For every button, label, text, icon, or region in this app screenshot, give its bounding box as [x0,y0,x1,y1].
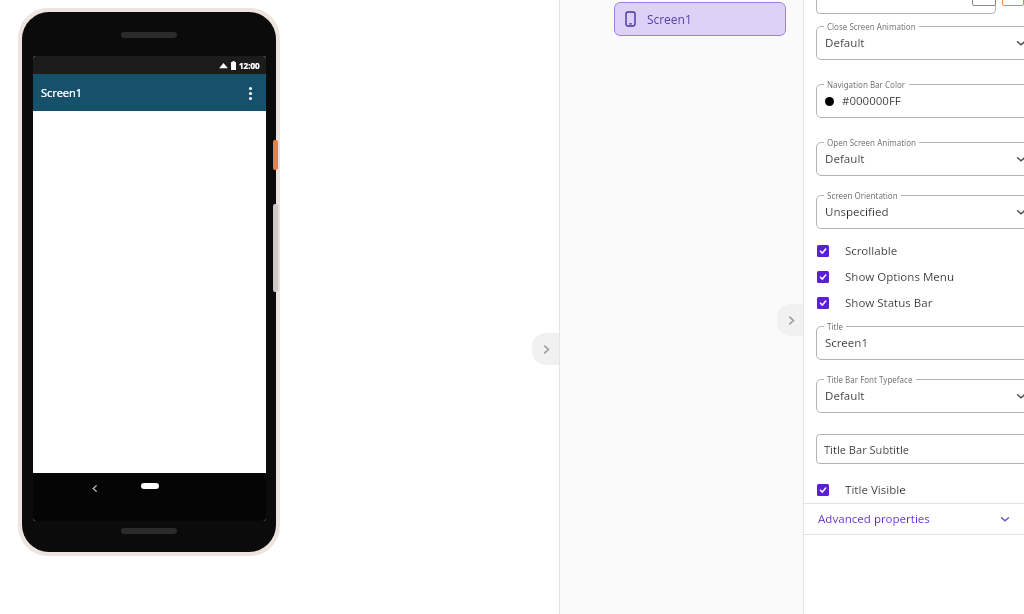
button[interactable]: Expand properties panel [777,304,805,336]
button[interactable] [816,142,1024,176]
button[interactable]: Expand left panel [532,333,560,365]
staticText: Title Bar Subtitle [824,442,909,457]
button[interactable] [816,0,996,14]
staticText: Unspecified [825,204,889,220]
staticText: Screen Orientation [827,190,898,201]
button[interactable]: Title Bar Subtitle [816,434,1024,464]
staticText: Default [825,35,865,51]
staticText: Navigation Bar Color [827,79,906,90]
staticText: Screen1 [41,85,83,100]
staticText: Open Screen Animation [827,137,916,148]
button[interactable] [816,379,1024,413]
staticText: Show Status Bar [845,295,933,311]
button[interactable]: More options [240,83,260,103]
staticText: Screen1 [647,11,692,27]
button[interactable]: Home [141,483,159,489]
button[interactable]: Show Options Menu [817,266,1017,288]
button[interactable] [816,26,1024,60]
button[interactable]: Title Visible [817,479,1017,501]
staticText: #000000FF [842,93,901,109]
button[interactable] [816,326,1024,360]
staticText: Advanced properties [818,511,930,527]
button[interactable] [816,84,1024,118]
staticText: Title [827,321,843,332]
button[interactable]: Show Status Bar [817,292,1017,314]
staticText: Close Screen Animation [827,21,916,32]
button[interactable]: Screen1 [614,2,786,36]
staticText: Title Bar Font Typeface [827,374,913,385]
staticText: 12:00 [239,60,260,71]
staticText: Title Visible [845,482,906,498]
staticText: Default [825,151,865,167]
button[interactable]: Back [85,479,103,497]
button[interactable]: Delete [1002,0,1024,6]
staticText: Default [825,388,865,404]
button[interactable]: Copy [972,0,996,6]
button[interactable] [816,195,1024,229]
staticText: Show Options Menu [845,269,955,285]
staticText: Screen1 [825,335,869,351]
button[interactable]: Advanced properties [804,504,1024,534]
staticText: Scrollable [845,243,898,259]
button[interactable]: Scrollable [817,240,1017,262]
